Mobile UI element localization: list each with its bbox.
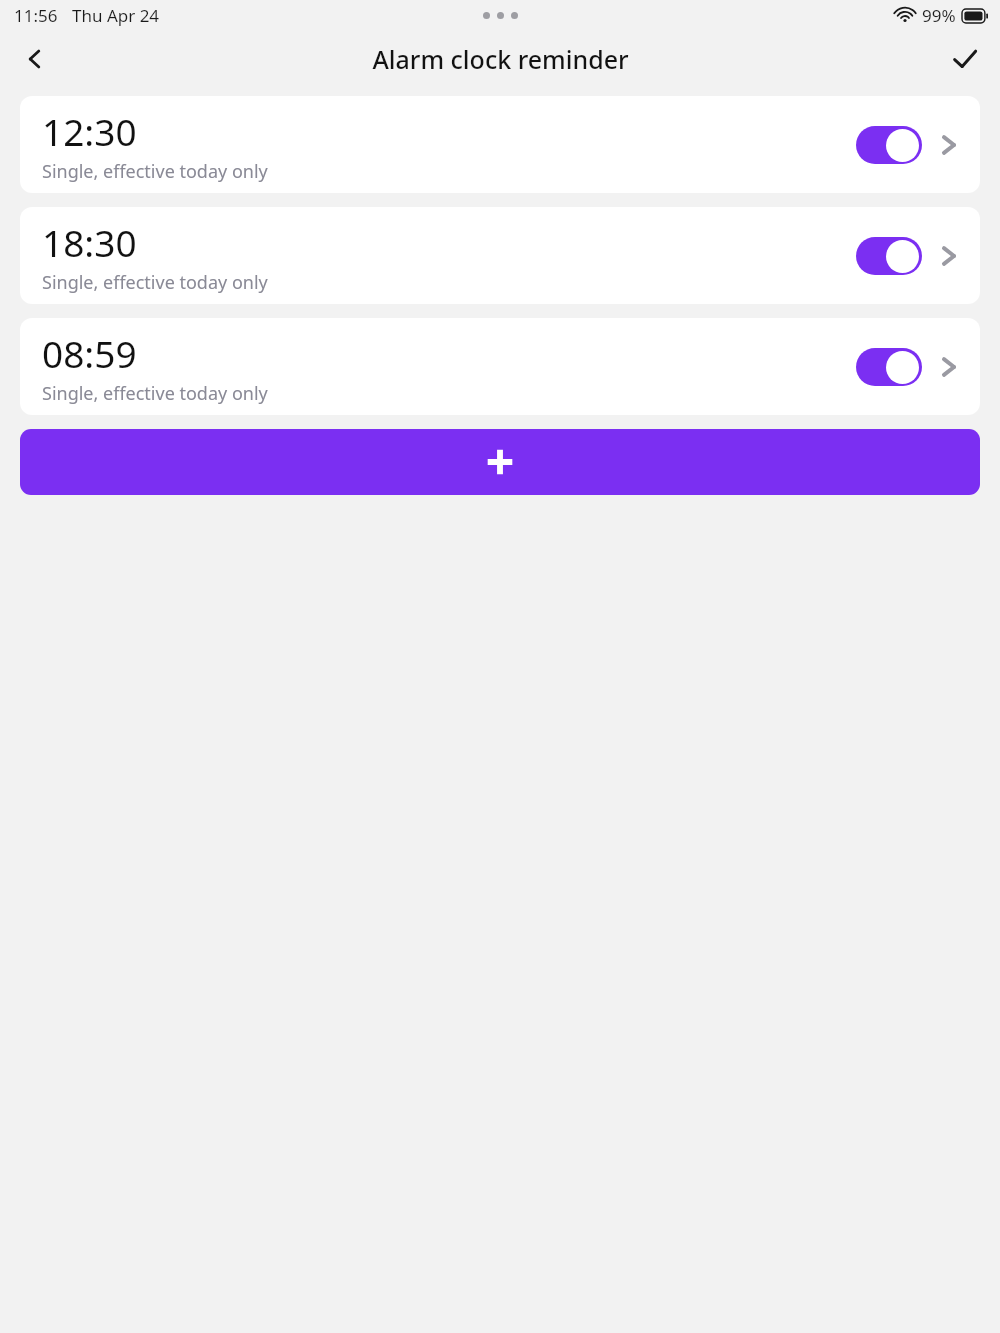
staticText: Single, effective today only bbox=[42, 270, 268, 295]
staticText: Single, effective today only bbox=[42, 159, 268, 184]
staticText: Single, effective today only bbox=[42, 381, 268, 406]
button[interactable]: Alarm enabled toggle bbox=[856, 348, 922, 386]
staticText: Thu Apr 24 bbox=[72, 4, 160, 27]
staticText: 99% bbox=[922, 4, 956, 27]
staticText: 12:30 bbox=[42, 106, 137, 156]
button[interactable]: Alarm enabled toggle bbox=[856, 237, 922, 275]
staticText: 08:59 bbox=[42, 328, 137, 378]
button[interactable]: 12:30 bbox=[20, 96, 980, 193]
staticText: 18:30 bbox=[42, 217, 137, 267]
button[interactable]: Alarm enabled toggle bbox=[856, 126, 922, 164]
button[interactable]: Confirm bbox=[936, 30, 994, 88]
button[interactable]: 08:59 bbox=[20, 318, 980, 415]
button[interactable]: 18:30 bbox=[20, 207, 980, 304]
button[interactable]: Back bbox=[6, 30, 64, 88]
button[interactable]: Add alarm bbox=[20, 429, 980, 495]
staticText: Alarm clock reminder bbox=[372, 42, 629, 76]
staticText: 11:56 bbox=[14, 4, 58, 27]
